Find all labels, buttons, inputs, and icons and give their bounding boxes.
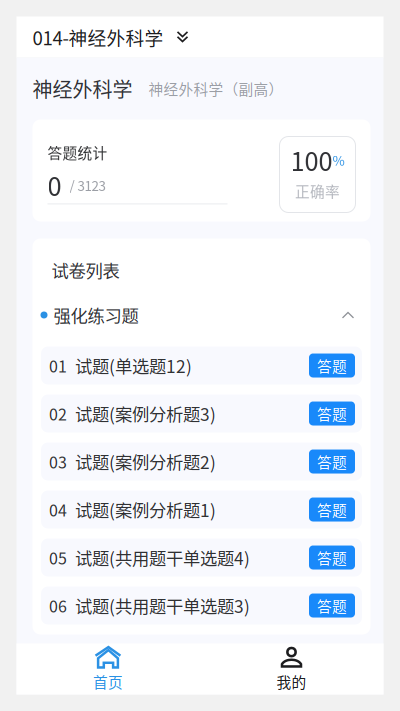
- staticText: 答题: [317, 403, 347, 424]
- staticText: 答题统计: [47, 141, 107, 163]
- button[interactable]: 首页: [16, 643, 199, 694]
- staticText: 答题: [317, 451, 347, 472]
- staticText: 我的: [276, 671, 306, 692]
- staticText: 强化练习题: [53, 302, 138, 328]
- staticText: 神经外科学（副高）: [148, 78, 283, 99]
- staticText: 答题: [317, 499, 347, 520]
- staticText: 试题(共用题干单选题4): [75, 545, 250, 570]
- button[interactable]: 强化练习题: [32, 293, 370, 336]
- staticText: 试卷列表: [51, 257, 119, 283]
- button[interactable]: 05: [41, 538, 362, 576]
- button[interactable]: 02: [41, 394, 362, 432]
- staticText: 神经外科学: [32, 74, 132, 103]
- staticText: 05: [49, 546, 67, 569]
- staticText: 试题(案例分析题1): [75, 497, 216, 522]
- button[interactable]: 03: [41, 442, 362, 480]
- staticText: 03: [49, 450, 67, 473]
- staticText: 06: [49, 594, 67, 617]
- staticText: 答题: [317, 355, 347, 376]
- staticText: 正确率: [295, 180, 340, 201]
- staticText: 试题(共用题干单选题3): [75, 593, 250, 618]
- button[interactable]: 04: [41, 490, 362, 528]
- staticText: 试题(案例分析题2): [75, 449, 216, 474]
- button[interactable]: 014-神经外科学: [16, 16, 383, 57]
- staticText: 02: [49, 402, 67, 425]
- staticText: 04: [49, 498, 67, 521]
- staticText: 试题(单选题12): [75, 353, 192, 378]
- button[interactable]: 01: [41, 346, 362, 384]
- staticText: 首页: [93, 671, 123, 692]
- staticText: 100: [290, 141, 332, 178]
- staticText: 01: [49, 354, 67, 377]
- staticText: 答题: [317, 547, 347, 568]
- staticText: / 3123: [69, 175, 105, 195]
- staticText: 试题(案例分析题3): [75, 401, 216, 426]
- staticText: %: [332, 150, 344, 169]
- staticText: 0: [47, 167, 61, 203]
- staticText: 答题: [317, 595, 347, 616]
- button[interactable]: 我的: [199, 643, 383, 694]
- staticText: 014-神经外科学: [32, 23, 163, 50]
- button[interactable]: 06: [41, 586, 362, 624]
